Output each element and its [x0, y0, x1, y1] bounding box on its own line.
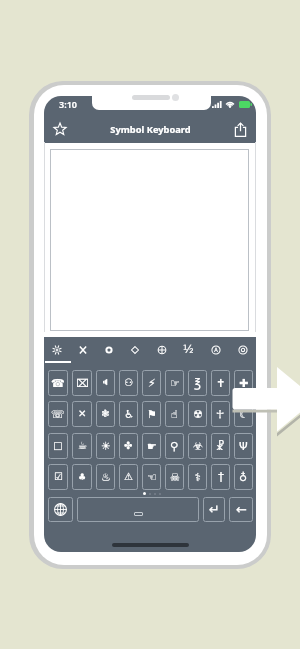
button[interactable]: Return — [203, 497, 225, 522]
staticText: ← — [236, 502, 247, 517]
button[interactable]: target — [229, 337, 256, 362]
button[interactable]: Favorite — [47, 116, 73, 142]
button[interactable]: ⚠ — [119, 464, 138, 490]
button[interactable]: sun — [44, 337, 70, 362]
button[interactable]: † — [211, 464, 230, 490]
staticText: † — [218, 470, 224, 484]
button[interactable]: ☞ — [165, 370, 184, 396]
staticText: ☜ — [147, 471, 157, 484]
staticText: ½ — [183, 343, 194, 356]
button[interactable]: ♿ — [119, 401, 138, 427]
button[interactable]: ✚ — [234, 370, 253, 396]
button[interactable]: ☑ — [48, 464, 68, 490]
button[interactable]: ☠ — [165, 464, 184, 490]
button[interactable]: x — [70, 337, 96, 362]
button[interactable]: 🔈 — [96, 370, 115, 396]
staticText: ♿ — [124, 408, 134, 421]
button[interactable]: a — [202, 337, 229, 362]
staticText: ☧ — [216, 440, 225, 453]
button[interactable]: half — [175, 337, 202, 362]
staticText: □ — [53, 440, 63, 452]
staticText: ✚ — [239, 377, 249, 390]
button[interactable]: ✝ — [211, 370, 230, 396]
button[interactable]: ✕ — [72, 401, 92, 427]
staticText: Symbol Keyboard — [110, 123, 191, 136]
button[interactable]: ❃ — [96, 401, 115, 427]
staticText: ☕ — [78, 440, 87, 452]
staticText: ⚲ — [170, 440, 179, 453]
button[interactable]: Backspace — [229, 497, 253, 522]
staticText: ♁ — [239, 471, 248, 484]
staticText: ☀ — [101, 440, 111, 453]
staticText: ♨ — [101, 471, 111, 484]
button[interactable]: plus — [148, 337, 175, 362]
staticText: ⌧ — [76, 377, 89, 390]
staticText: ☠ — [170, 471, 180, 484]
staticText: ✝ — [216, 377, 226, 390]
button[interactable]: ☕ — [72, 433, 92, 459]
button[interactable]: ☢ — [188, 401, 207, 427]
button[interactable] — [50, 149, 249, 331]
staticText: 3:10 — [59, 98, 77, 110]
button[interactable]: Language — [48, 497, 73, 522]
button[interactable]: ℥ — [188, 370, 207, 396]
button[interactable]: ⚑ — [142, 401, 161, 427]
staticText: ☾ — [239, 408, 249, 421]
button[interactable]: ☥ — [211, 401, 230, 427]
button[interactable]: ☝ — [165, 401, 184, 427]
button[interactable]: ☎ — [48, 370, 68, 396]
button[interactable]: ⚡ — [142, 370, 161, 396]
staticText: ↵ — [209, 502, 220, 517]
button[interactable]: dot — [96, 337, 122, 362]
button[interactable]: ☏ — [48, 401, 68, 427]
staticText: ☑ — [54, 471, 63, 483]
staticText: ⚡ — [148, 377, 156, 390]
staticText: ☝ — [171, 408, 178, 421]
staticText: ✤ — [124, 440, 133, 452]
staticText: ☞ — [170, 377, 180, 390]
staticText: 🔈 — [101, 376, 110, 390]
staticText: ☏ — [51, 408, 65, 421]
staticText: ❃ — [101, 408, 110, 420]
button[interactable]: ⚲ — [165, 433, 184, 459]
button[interactable]: ⚇ — [119, 370, 138, 396]
button[interactable]: Symbol Keyboard — [90, 115, 210, 143]
button[interactable]: ☣ — [188, 433, 207, 459]
button[interactable]: ♨ — [96, 464, 115, 490]
button[interactable]: ⌧ — [72, 370, 92, 396]
button[interactable]: ☛ — [142, 433, 161, 459]
staticText: ✕ — [78, 408, 87, 420]
button[interactable]: diamond — [122, 337, 148, 362]
button[interactable]: ☾ — [234, 401, 253, 427]
button[interactable]: ☀ — [96, 433, 115, 459]
button[interactable]: ⚕ — [188, 464, 207, 490]
button[interactable]: Share — [227, 116, 253, 142]
button[interactable]: ☧ — [211, 433, 230, 459]
button[interactable]: ♁ — [234, 464, 253, 490]
button[interactable]: Ψ — [234, 433, 253, 459]
staticText: ☢ — [193, 408, 203, 421]
staticText: ⚠ — [124, 471, 133, 483]
button[interactable]: □ — [48, 433, 68, 459]
staticText: Ψ — [239, 440, 248, 453]
staticText: ☥ — [216, 408, 225, 421]
staticText: ☎ — [51, 377, 65, 390]
staticText: ℥ — [194, 376, 201, 390]
button[interactable]: ♣ — [72, 464, 92, 490]
staticText: ⚇ — [124, 377, 133, 389]
staticText: ☛ — [147, 440, 157, 453]
button[interactable]: ✤ — [119, 433, 138, 459]
staticText: ⚑ — [147, 408, 157, 421]
staticText: ♣ — [78, 472, 87, 482]
button[interactable]: ☜ — [142, 464, 161, 490]
staticText: ⚕ — [195, 471, 201, 484]
staticText: ☣ — [193, 440, 203, 453]
button[interactable]: Space — [77, 497, 199, 522]
